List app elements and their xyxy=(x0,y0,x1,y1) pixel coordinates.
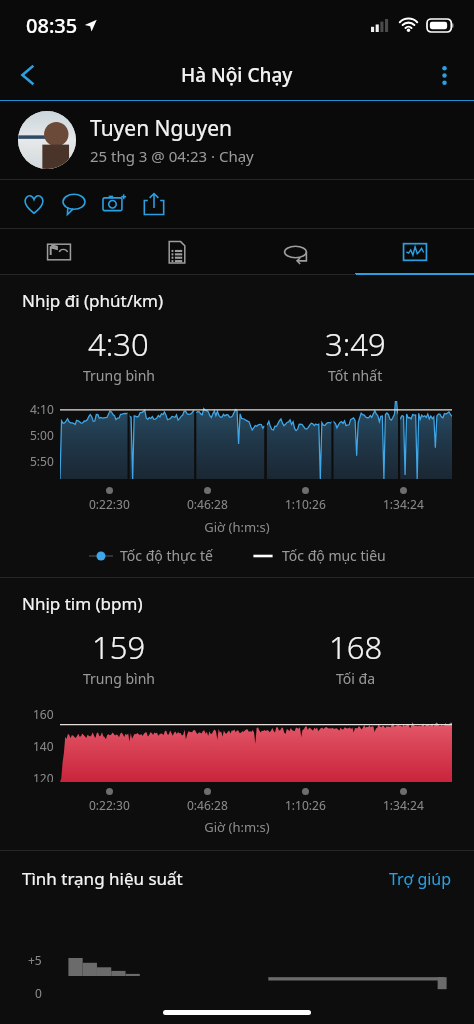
staticText: 0 xyxy=(35,985,42,1001)
staticText: Nhịp tim (bpm) xyxy=(22,592,143,615)
staticText: 4:10 xyxy=(30,401,54,417)
button[interactable]: Like xyxy=(14,182,54,226)
staticText: Giờ (h:m:s) xyxy=(0,818,474,836)
staticText: 3:49 xyxy=(325,323,386,365)
staticText: 159 xyxy=(92,626,146,668)
button[interactable]: Back xyxy=(6,53,50,97)
button[interactable]: Laps xyxy=(236,229,355,275)
staticText: Trung bình xyxy=(83,669,155,688)
staticText: 0:46:28 xyxy=(187,797,228,813)
staticText: 5:00 xyxy=(30,427,54,443)
staticText: Tốc độ thực tế xyxy=(120,546,213,565)
staticText: Tốc độ mục tiêu xyxy=(282,546,386,565)
staticText: Trung bình xyxy=(83,366,155,385)
staticText: Hà Nội Chạy xyxy=(181,62,293,88)
staticText: 1:10:26 xyxy=(285,797,326,813)
staticText: 08:35 xyxy=(26,12,78,39)
staticText: 168 xyxy=(329,626,383,668)
staticText: 1:10:26 xyxy=(285,496,326,512)
staticText: 0:22:30 xyxy=(89,797,130,813)
staticText: 25 thg 3 @ 04:23 · Chạy xyxy=(90,146,254,166)
button[interactable]: Trợ giúp xyxy=(389,868,452,890)
button[interactable]: Tuyen Nguyen xyxy=(0,101,474,179)
staticText: Tốt nhất xyxy=(328,366,383,385)
staticText: Trợ giúp xyxy=(389,868,452,890)
staticText: Nhịp đi (phút/km) xyxy=(22,289,164,312)
staticText: Giờ (h:m:s) xyxy=(0,518,474,536)
staticText: 1:34:24 xyxy=(383,496,424,512)
button[interactable]: Map xyxy=(0,229,118,275)
button[interactable]: Details xyxy=(118,229,236,275)
staticText: Tối đa xyxy=(336,669,376,688)
staticText: +5 xyxy=(28,952,42,968)
staticText: 5:50 xyxy=(30,453,54,469)
staticText: 120 xyxy=(33,770,54,782)
staticText: 4:30 xyxy=(88,323,149,365)
staticText: 160 xyxy=(33,706,54,722)
staticText: 140 xyxy=(33,738,54,754)
staticText: 0:46:28 xyxy=(187,496,228,512)
staticText: 0:22:30 xyxy=(89,496,130,512)
button[interactable]: More options xyxy=(422,53,466,97)
button[interactable]: Charts xyxy=(355,229,474,275)
staticText: Tình trạng hiệu suất xyxy=(22,867,389,890)
button[interactable]: Add photo xyxy=(94,182,134,226)
staticText: Tuyen Nguyen xyxy=(90,114,232,143)
staticText: 1:34:24 xyxy=(383,797,424,813)
button[interactable]: Comment xyxy=(54,182,94,226)
button[interactable]: Share xyxy=(134,182,174,226)
